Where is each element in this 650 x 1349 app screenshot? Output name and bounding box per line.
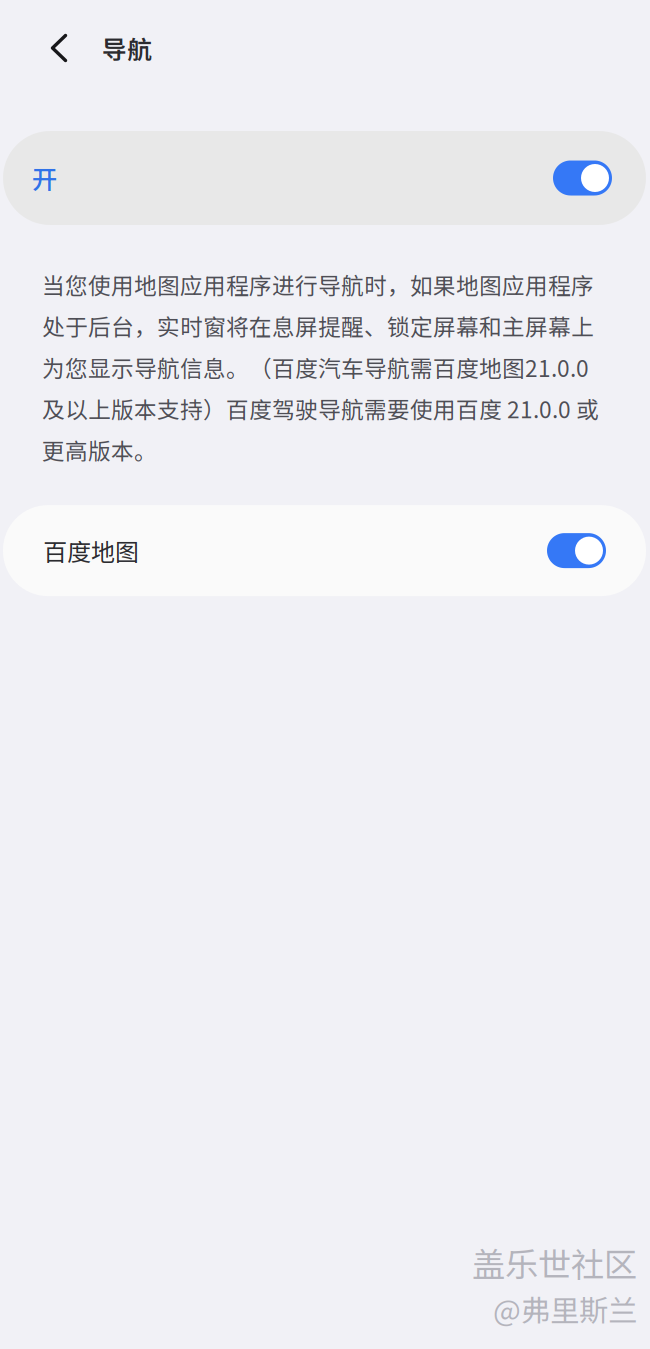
button[interactable]: 百度地图 [3,505,646,596]
button[interactable]: 开 [3,131,646,225]
staticText: 百度地图 [43,533,139,568]
staticText: 导航 [102,30,152,66]
staticText: @弗里斯兰 [493,1287,637,1330]
staticText: 盖乐世社区 [472,1238,637,1287]
button[interactable]: Back [0,6,102,90]
staticText: 当您使用地图应用程序进行导航时，如果地图应用程序处于后台，实时窗将在息屏提醒、锁… [42,268,599,466]
staticText: 开 [32,160,57,196]
